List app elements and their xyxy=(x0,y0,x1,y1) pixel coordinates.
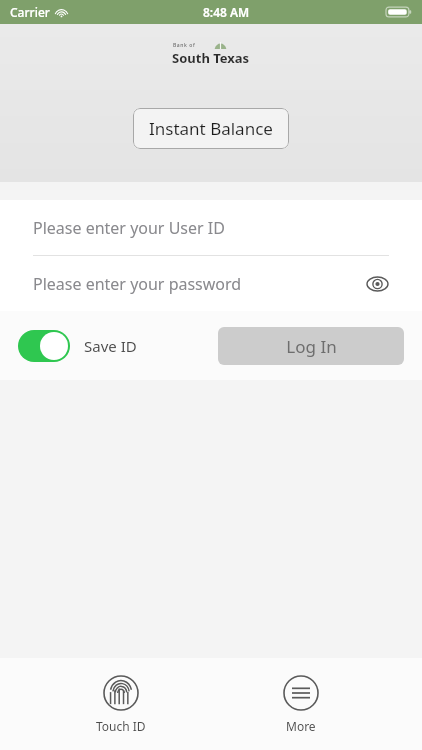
staticText: Carrier xyxy=(10,4,50,20)
staticText: South Texas xyxy=(172,49,250,67)
staticText: Instant Balance xyxy=(149,117,273,140)
staticText: 8:48 AM xyxy=(203,4,250,20)
button[interactable]: Save ID xyxy=(18,330,143,362)
button[interactable]: Touch ID xyxy=(61,671,181,738)
button[interactable]: Log In xyxy=(218,327,404,365)
staticText: Touch ID xyxy=(96,718,146,734)
button[interactable]: Show password xyxy=(360,267,394,301)
staticText: Save ID xyxy=(84,336,137,356)
button[interactable]: Please enter your password xyxy=(0,256,422,311)
staticText: Please enter your User ID xyxy=(33,217,225,239)
staticText: Log In xyxy=(286,335,337,358)
staticText: Bank of xyxy=(173,42,196,49)
button[interactable]: More xyxy=(241,671,361,738)
staticText: More xyxy=(286,718,316,734)
staticText: Please enter your password xyxy=(33,273,242,295)
button[interactable]: Please enter your User ID xyxy=(0,200,422,255)
button[interactable]: Instant Balance xyxy=(133,108,289,149)
